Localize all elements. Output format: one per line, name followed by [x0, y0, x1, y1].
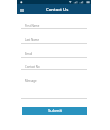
staticText: First Name — [25, 24, 40, 28]
staticText: Email — [25, 52, 33, 56]
button[interactable]: First Name — [21, 24, 87, 30]
button[interactable]: Email — [21, 52, 87, 58]
staticText: Message — [25, 79, 37, 83]
staticText: Submit — [48, 108, 62, 114]
button[interactable]: Last Name — [21, 38, 87, 44]
button[interactable]: Open navigation menu — [18, 6, 26, 14]
button[interactable]: Message — [21, 79, 87, 100]
staticText: Last Name — [25, 38, 39, 42]
staticText: Contact Us — [46, 6, 69, 12]
button[interactable]: Submit — [22, 107, 87, 115]
staticText: Contact No — [25, 65, 40, 69]
button[interactable]: Contact No — [21, 65, 87, 70]
